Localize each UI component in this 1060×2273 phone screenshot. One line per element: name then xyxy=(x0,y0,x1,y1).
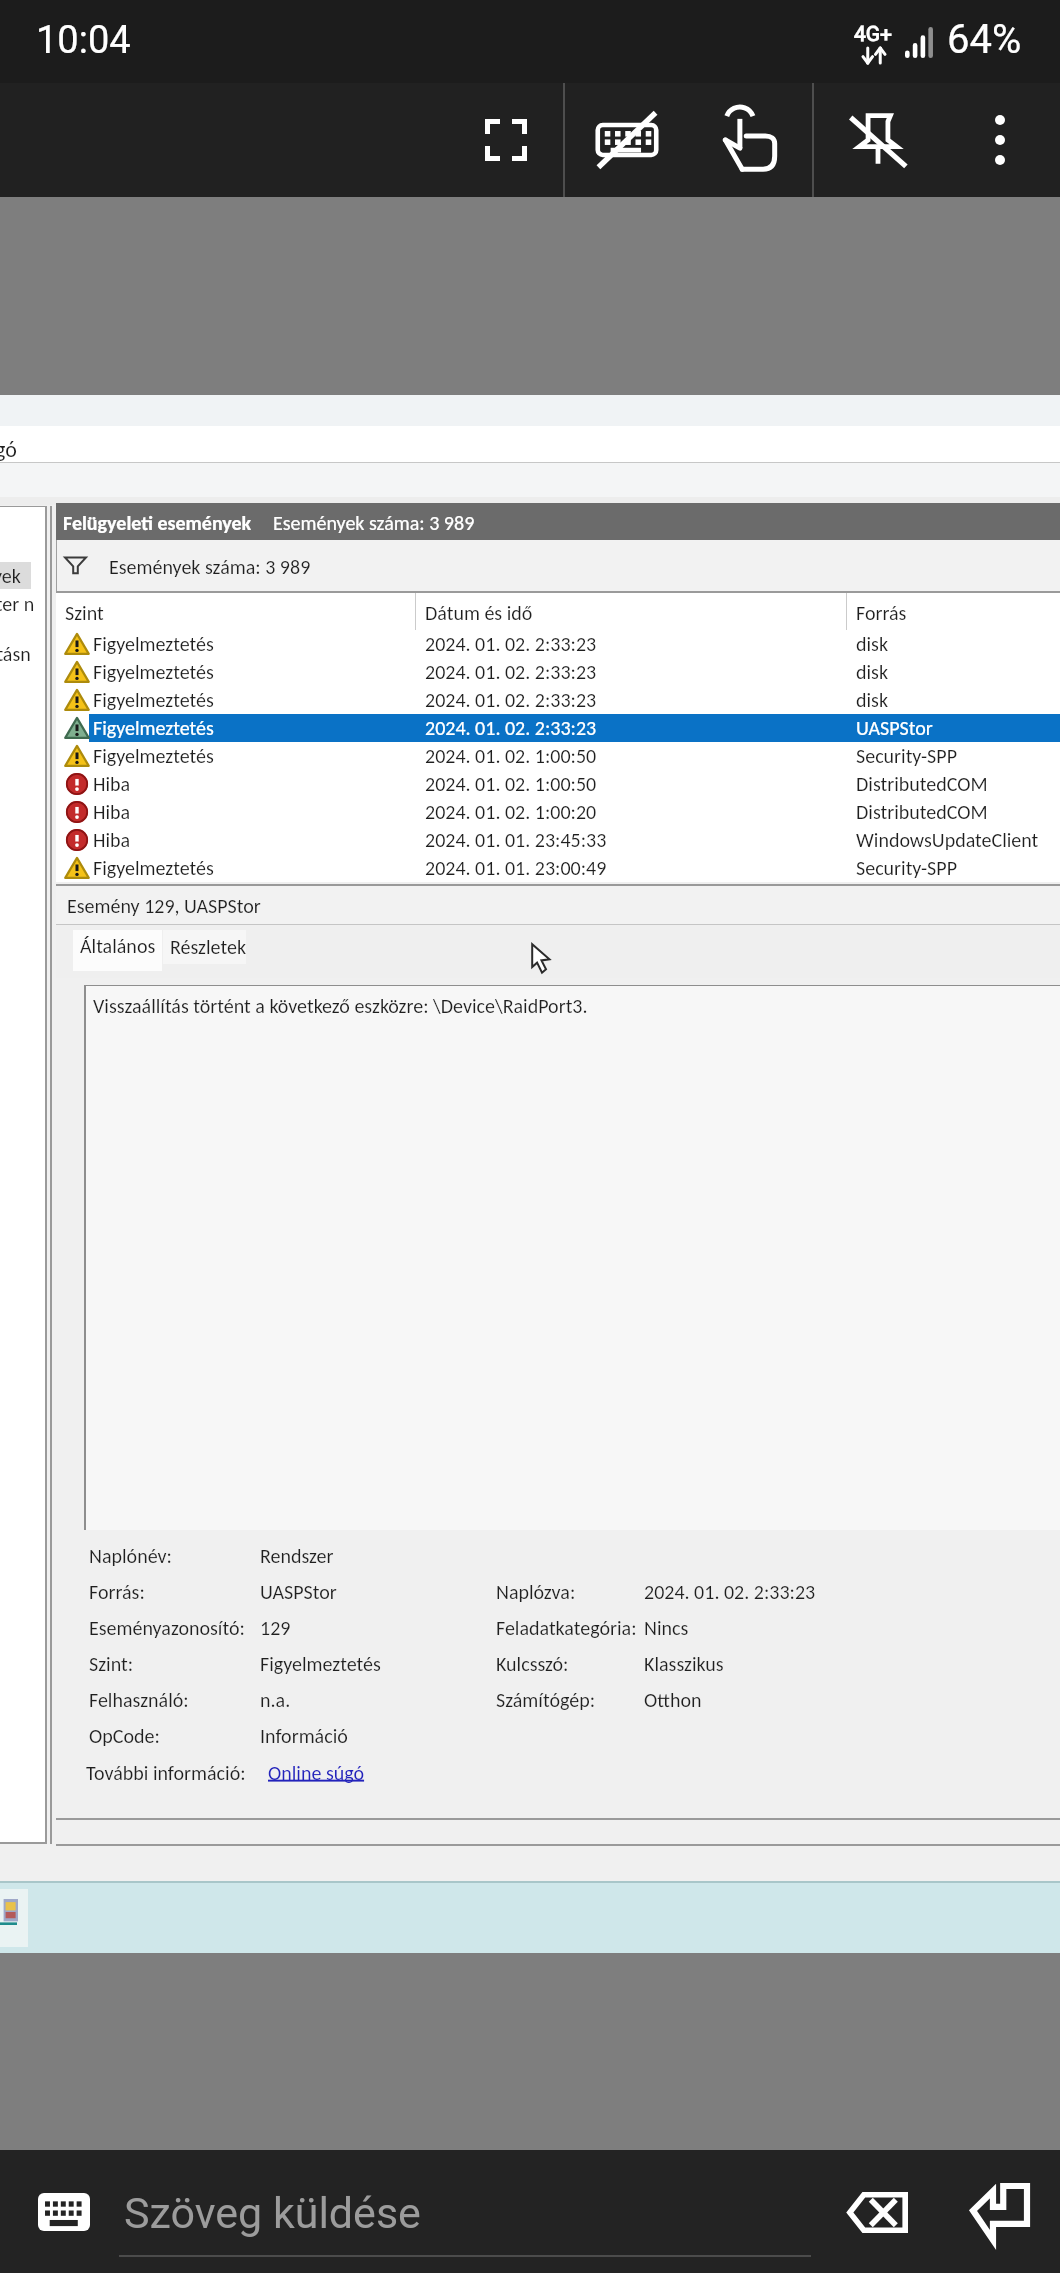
staticText: 2024. 01. 02. 2:33:23 xyxy=(425,632,597,656)
staticText: Hiba xyxy=(93,828,131,852)
staticText: 2024. 01. 01. 23:00:49 xyxy=(425,856,607,880)
staticText: Figyelmeztetés xyxy=(93,688,214,712)
button[interactable]: Hiba xyxy=(56,770,1060,798)
staticText: 10:04 xyxy=(36,18,131,63)
staticText: disk xyxy=(856,688,889,712)
staticText: Figyelmeztetés xyxy=(93,660,214,684)
staticText: disk xyxy=(856,660,889,684)
staticText: 2024. 01. 02. 1:00:20 xyxy=(425,800,597,824)
staticText: Figyelmeztetés xyxy=(93,856,214,880)
staticText: 64% xyxy=(947,16,1022,63)
staticText: Visszaállítás történt a következő eszköz… xyxy=(93,994,588,1018)
staticText: Szint: xyxy=(89,1652,134,1676)
button[interactable]: Szöveg küldése xyxy=(110,2168,830,2264)
button[interactable]: Figyelmeztetés xyxy=(56,658,1060,686)
button[interactable]: Hiba xyxy=(56,826,1060,854)
button[interactable]: Fullscreen xyxy=(441,83,571,197)
staticText: Figyelmeztetés xyxy=(93,716,214,740)
staticText: Forrás xyxy=(856,601,907,625)
staticText: Felügyeleti események xyxy=(63,511,252,535)
button[interactable]: Figyelmeztetés xyxy=(56,742,1060,770)
button[interactable]: Figyelmeztetés xyxy=(56,714,1060,742)
staticText: xter n xyxy=(0,592,35,616)
staticText: Security-SPP xyxy=(856,744,957,768)
button[interactable]: Touch mode xyxy=(690,83,806,197)
staticText: Események száma: 3 989 xyxy=(109,555,311,579)
staticText: Klasszikus xyxy=(644,1652,724,1676)
staticText: 2024. 01. 02. 2:33:23 xyxy=(425,716,597,740)
staticText: 2024. 01. 02. 2:33:23 xyxy=(425,688,597,712)
staticText: disk xyxy=(856,632,889,656)
staticText: Security-SPP xyxy=(856,856,957,880)
staticText: Rendszer xyxy=(260,1544,334,1568)
staticText: 2024. 01. 02. 1:00:50 xyxy=(425,744,597,768)
button[interactable]: Figyelmeztetés xyxy=(56,854,1060,882)
staticText: 4G+ xyxy=(854,22,893,47)
staticText: Esemény 129, UASPStor xyxy=(67,894,261,918)
staticText: 129 xyxy=(260,1616,291,1640)
staticText: Számítógép: xyxy=(496,1688,596,1712)
staticText: 2024. 01. 02. 2:33:23 xyxy=(425,660,597,684)
button[interactable]: Hide keyboard xyxy=(565,83,689,197)
staticText: Általános xyxy=(80,934,156,958)
button[interactable]: Backspace xyxy=(829,2175,925,2249)
staticText: További információ: xyxy=(86,1761,246,1785)
staticText: Forrás: xyxy=(89,1580,145,1604)
button[interactable]: More options xyxy=(938,83,1060,197)
button[interactable]: Figyelmeztetés xyxy=(56,686,1060,714)
staticText: Otthon xyxy=(644,1688,702,1712)
staticText: UASPStor xyxy=(260,1580,337,1604)
staticText: gó xyxy=(0,436,17,463)
staticText: Eseményazonosító: xyxy=(89,1616,245,1640)
staticText: UASPStor xyxy=(856,716,933,740)
staticText: 2024. 01. 01. 23:45:33 xyxy=(425,828,607,852)
staticText: Online súgó xyxy=(268,1761,365,1785)
staticText: yek xyxy=(0,564,21,588)
staticText: atásn xyxy=(0,642,31,666)
staticText: Kulcsszó: xyxy=(496,1652,569,1676)
staticText: Naplózva: xyxy=(496,1580,576,1604)
button[interactable]: Hiba xyxy=(56,798,1060,826)
staticText: Felhasználó: xyxy=(89,1688,189,1712)
staticText: Események száma: 3 989 xyxy=(273,511,475,535)
staticText: DistributedCOM xyxy=(856,772,988,796)
button[interactable]: Figyelmeztetés xyxy=(56,630,1060,658)
staticText: Feladatkategória: xyxy=(496,1616,637,1640)
staticText: WindowsUpdateClient xyxy=(856,828,1039,852)
staticText: Figyelmeztetés xyxy=(93,744,214,768)
staticText: Nincs xyxy=(644,1616,689,1640)
staticText: Hiba xyxy=(93,772,131,796)
button[interactable] xyxy=(73,930,162,971)
button[interactable]: Online súgó xyxy=(268,1761,365,1785)
staticText: 2024. 01. 02. 1:00:50 xyxy=(425,772,597,796)
staticText: Dátum és idő xyxy=(425,601,533,625)
button[interactable]: Enter xyxy=(952,2170,1048,2256)
staticText: Naplónév: xyxy=(89,1544,172,1568)
button[interactable] xyxy=(163,930,246,964)
staticText: Hiba xyxy=(93,800,131,824)
staticText: 2024. 01. 02. 2:33:23 xyxy=(644,1580,816,1604)
staticText: n.a. xyxy=(260,1688,291,1712)
staticText: Figyelmeztetés xyxy=(93,632,214,656)
staticText: OpCode: xyxy=(89,1724,160,1748)
staticText: Szöveg küldése xyxy=(124,2188,421,2238)
staticText: DistributedCOM xyxy=(856,800,988,824)
staticText: Részletek xyxy=(170,935,246,959)
staticText: Figyelmeztetés xyxy=(260,1652,381,1676)
button[interactable] xyxy=(0,1889,28,1947)
staticText: Információ xyxy=(260,1724,348,1748)
button[interactable]: Unpin xyxy=(814,83,942,197)
staticText: Szint xyxy=(65,601,104,625)
button[interactable]: Show keyboard xyxy=(26,2181,102,2243)
